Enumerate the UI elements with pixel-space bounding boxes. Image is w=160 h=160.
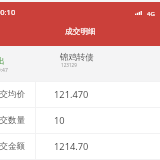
button[interactable]: 成交数量 bbox=[0, 108, 160, 133]
staticText: 成交均价 bbox=[0, 89, 25, 100]
button[interactable]: 成交均价 bbox=[0, 82, 160, 107]
staticText: 10 bbox=[54, 114, 65, 127]
staticText: 卖出 bbox=[0, 56, 5, 67]
other: Cellular signal strength bbox=[135, 11, 142, 15]
staticText: 成交数量 bbox=[0, 115, 25, 126]
staticText: 成交明细 bbox=[65, 27, 96, 37]
staticText: 1214.70 bbox=[54, 140, 89, 153]
staticText: 锦鸡转债 bbox=[60, 52, 94, 63]
staticText: 09:47 bbox=[0, 67, 8, 74]
staticText: 4G bbox=[147, 10, 155, 18]
button[interactable]: 成交金额 bbox=[0, 134, 160, 159]
staticText: 10:10 bbox=[0, 7, 16, 17]
staticText: 123129 bbox=[61, 62, 77, 68]
button[interactable]: 卖出 bbox=[0, 46, 160, 82]
staticText: 成交金额 bbox=[0, 141, 25, 152]
staticText: 121.470 bbox=[54, 88, 89, 101]
